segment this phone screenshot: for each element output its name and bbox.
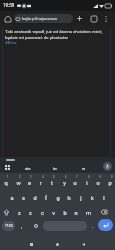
button[interactable]: x bbox=[24, 205, 36, 219]
button[interactable]: 7 bbox=[69, 175, 81, 189]
button[interactable]: s bbox=[17, 190, 29, 204]
staticText: w bbox=[82, 166, 86, 171]
staticText: 8 bbox=[88, 175, 90, 178]
button[interactable]: j bbox=[75, 190, 87, 204]
staticText: , bbox=[21, 223, 22, 229]
staticText: x bbox=[29, 210, 32, 217]
staticText: k bbox=[91, 195, 94, 202]
button[interactable]: ?123 bbox=[2, 221, 15, 231]
button[interactable]: z bbox=[13, 205, 25, 219]
button[interactable]: 9 bbox=[92, 175, 104, 189]
staticText: 9 bbox=[99, 175, 101, 178]
staticText: g bbox=[56, 195, 60, 202]
button[interactable]: Recent apps bbox=[25, 238, 37, 250]
button[interactable]: Back bbox=[77, 238, 89, 250]
button[interactable]: 2 bbox=[12, 175, 24, 189]
button[interactable]: 4 bbox=[35, 175, 47, 189]
staticText: e bbox=[28, 180, 31, 187]
button[interactable]: hejto.pl/najnowsze bbox=[14, 14, 73, 23]
staticText: 1 bbox=[7, 175, 9, 178]
button[interactable]: Home bbox=[51, 238, 63, 250]
staticText: w bbox=[16, 180, 21, 187]
button[interactable]: Space bbox=[43, 221, 87, 231]
button[interactable]: m bbox=[82, 205, 94, 219]
button[interactable]: 3 bbox=[23, 175, 35, 189]
button[interactable]: 5 bbox=[46, 175, 58, 189]
button[interactable]: 8 bbox=[81, 175, 93, 189]
button[interactable]: New tab bbox=[74, 13, 85, 24]
staticText: c bbox=[41, 210, 44, 217]
staticText: m bbox=[86, 210, 91, 217]
button[interactable]: More options bbox=[100, 13, 111, 24]
staticText: o bbox=[96, 180, 100, 187]
button[interactable]: Voice input bbox=[103, 162, 112, 171]
staticText: to bbox=[53, 166, 57, 171]
button[interactable]: Home bbox=[2, 13, 13, 24]
button[interactable]: c bbox=[36, 205, 48, 219]
button[interactable]: v bbox=[47, 205, 59, 219]
staticText: f bbox=[45, 195, 47, 202]
staticText: d bbox=[33, 195, 37, 202]
button[interactable]: 1 bbox=[0, 175, 12, 189]
staticText: 7 bbox=[76, 175, 78, 178]
button[interactable]: to bbox=[42, 161, 68, 175]
staticText: z bbox=[18, 210, 21, 217]
button[interactable]: b bbox=[59, 205, 71, 219]
button[interactable]: Emoji bbox=[30, 219, 41, 232]
button[interactable]: Tabs bbox=[88, 13, 99, 24]
staticText: 6 bbox=[65, 175, 67, 178]
staticText: 3 bbox=[30, 175, 32, 178]
staticText: p bbox=[108, 180, 112, 187]
staticText: h bbox=[67, 195, 71, 202]
button[interactable]: 0 bbox=[104, 175, 115, 189]
staticText: . bbox=[92, 223, 94, 229]
staticText: 2 bbox=[19, 175, 21, 178]
staticText: q bbox=[4, 180, 8, 187]
staticText: y bbox=[63, 180, 66, 187]
staticText: 19:59 bbox=[3, 3, 15, 8]
staticText: u bbox=[73, 180, 77, 187]
staticText: 0 bbox=[111, 175, 113, 178]
staticText: #Kino bbox=[5, 40, 17, 45]
staticText: nie bbox=[25, 166, 31, 171]
button[interactable]: g bbox=[52, 190, 64, 204]
staticText: t bbox=[51, 180, 53, 187]
button[interactable]: a bbox=[6, 190, 18, 204]
staticText: 5 bbox=[53, 175, 55, 178]
staticText: ?123 bbox=[5, 224, 13, 228]
staticText: r bbox=[40, 180, 42, 187]
button[interactable]: w bbox=[71, 161, 97, 175]
button[interactable]: f bbox=[40, 190, 52, 204]
button[interactable]: h bbox=[63, 190, 75, 204]
staticText: n bbox=[74, 210, 78, 217]
button[interactable]: d bbox=[29, 190, 41, 204]
button[interactable]: Shift bbox=[0, 205, 13, 219]
staticText: l bbox=[103, 195, 105, 202]
button[interactable]: Backspace bbox=[97, 205, 111, 219]
staticText: i bbox=[86, 180, 88, 187]
staticText: hejto.pl/najnowsze bbox=[22, 16, 58, 21]
staticText: v bbox=[52, 210, 55, 217]
button[interactable]: n bbox=[70, 205, 82, 219]
staticText: s bbox=[22, 195, 25, 202]
staticText: j bbox=[80, 195, 82, 202]
staticText: Taki zestawik wpadł, już od dawna chciał… bbox=[5, 29, 109, 40]
staticText: b bbox=[63, 210, 67, 217]
button[interactable]: k bbox=[86, 190, 98, 204]
button[interactable]: , bbox=[16, 219, 27, 232]
button[interactable]: l bbox=[98, 190, 110, 204]
button[interactable]: Keyboard toolbar bbox=[2, 162, 12, 172]
button[interactable]: . bbox=[87, 219, 98, 232]
button[interactable]: 6 bbox=[58, 175, 70, 189]
button[interactable]: nie bbox=[15, 161, 41, 175]
staticText: a bbox=[10, 195, 14, 202]
staticText: 4 bbox=[42, 175, 44, 178]
button[interactable]: Enter bbox=[98, 219, 113, 231]
